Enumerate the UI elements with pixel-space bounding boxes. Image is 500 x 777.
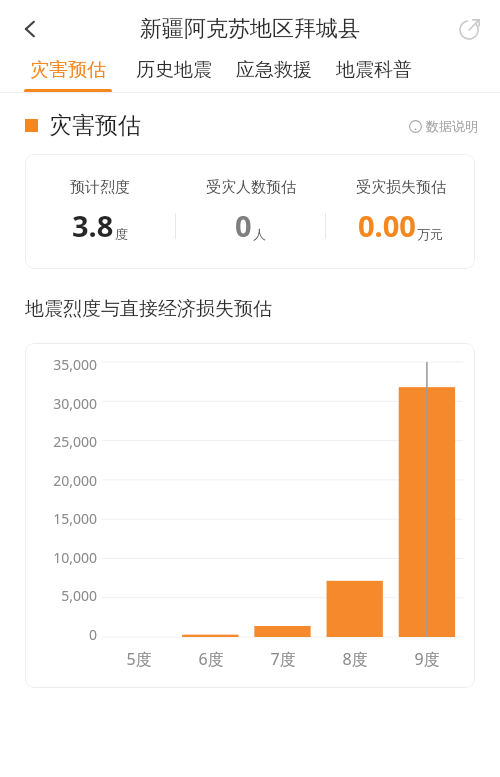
staticText: 0.00 (358, 206, 416, 245)
staticText: 数据说明 (426, 118, 478, 134)
staticText: 度 (115, 226, 128, 242)
button[interactable]: 预计烈度 (25, 154, 475, 269)
staticText: 30,000 (53, 394, 97, 413)
button[interactable]: Share (448, 7, 492, 51)
button[interactable]: 历史地震 (130, 58, 218, 93)
staticText: 15,000 (53, 509, 97, 528)
staticText: 9度 (414, 648, 440, 670)
staticText: 灾害预估 (49, 111, 141, 140)
staticText: 25,000 (53, 432, 97, 451)
staticText: 万元 (417, 226, 443, 242)
staticText: 灾害预估 (30, 58, 106, 82)
staticText: 5度 (126, 648, 152, 670)
staticText: 地震烈度与直接经济损失预估 (25, 297, 272, 321)
staticText: 8度 (342, 648, 368, 670)
staticText: 6度 (198, 648, 224, 670)
button[interactable]: Back (8, 7, 52, 51)
button[interactable]: 灾害预估 (18, 58, 118, 93)
button[interactable]: 地震科普 (330, 58, 418, 93)
staticText: 应急救援 (236, 58, 312, 82)
staticText: 10,000 (53, 548, 97, 567)
staticText: 0 (235, 206, 252, 245)
staticText: 35,000 (53, 355, 97, 374)
staticText: 7度 (270, 648, 296, 670)
staticText: 受灾损失预估 (356, 178, 446, 197)
staticText: 5,000 (61, 586, 97, 605)
button[interactable]: 35,000 (25, 343, 475, 688)
staticText: 20,000 (53, 471, 97, 490)
staticText: 3.8 (72, 206, 114, 245)
staticText: 受灾人数预估 (206, 178, 296, 197)
staticText: 预计烈度 (70, 178, 130, 197)
staticText: 人 (253, 226, 266, 242)
staticText: 新疆阿克苏地区拜城县 (140, 15, 360, 43)
button[interactable]: 应急救援 (230, 58, 318, 93)
staticText: 地震科普 (336, 58, 412, 82)
staticText: 历史地震 (136, 58, 212, 82)
button[interactable]: 数据说明 (409, 118, 478, 134)
staticText: 0 (88, 625, 97, 644)
